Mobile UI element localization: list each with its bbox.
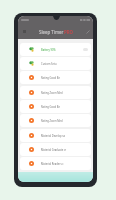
button[interactable]: Menu — [20, 27, 29, 36]
staticText: Battery 90% — [41, 48, 56, 52]
button[interactable]: Battery 90% — [20, 43, 91, 56]
staticText: Rating Zoom Med — [41, 119, 63, 123]
staticText: Rating Good Be — [41, 105, 60, 109]
button[interactable]: Rating Good Be — [20, 71, 91, 84]
button[interactable]: Rating Zoom Med — [20, 114, 91, 127]
button[interactable]: Material Develop sa — [20, 129, 91, 142]
staticText: Rating Good Be — [41, 76, 60, 80]
button[interactable]: Custom Setu — [20, 57, 91, 70]
staticText: Sleep Timer — [39, 29, 64, 35]
button[interactable]: Material Readers c — [20, 157, 91, 170]
button[interactable]: Rating Good Be — [20, 100, 91, 113]
staticText: Custom Setu — [41, 62, 57, 66]
staticText: Material Graduate cr — [41, 148, 67, 152]
staticText: Rating Zoom Med — [41, 91, 63, 95]
button[interactable]: Rating Zoom Med — [20, 86, 91, 99]
staticText: Material Develop sa — [41, 134, 66, 138]
button[interactable]: Material Graduate cr — [20, 143, 91, 156]
staticText: Material Readers c — [41, 162, 64, 166]
staticText: PRO — [64, 29, 74, 35]
button[interactable]: Edit — [83, 27, 92, 36]
